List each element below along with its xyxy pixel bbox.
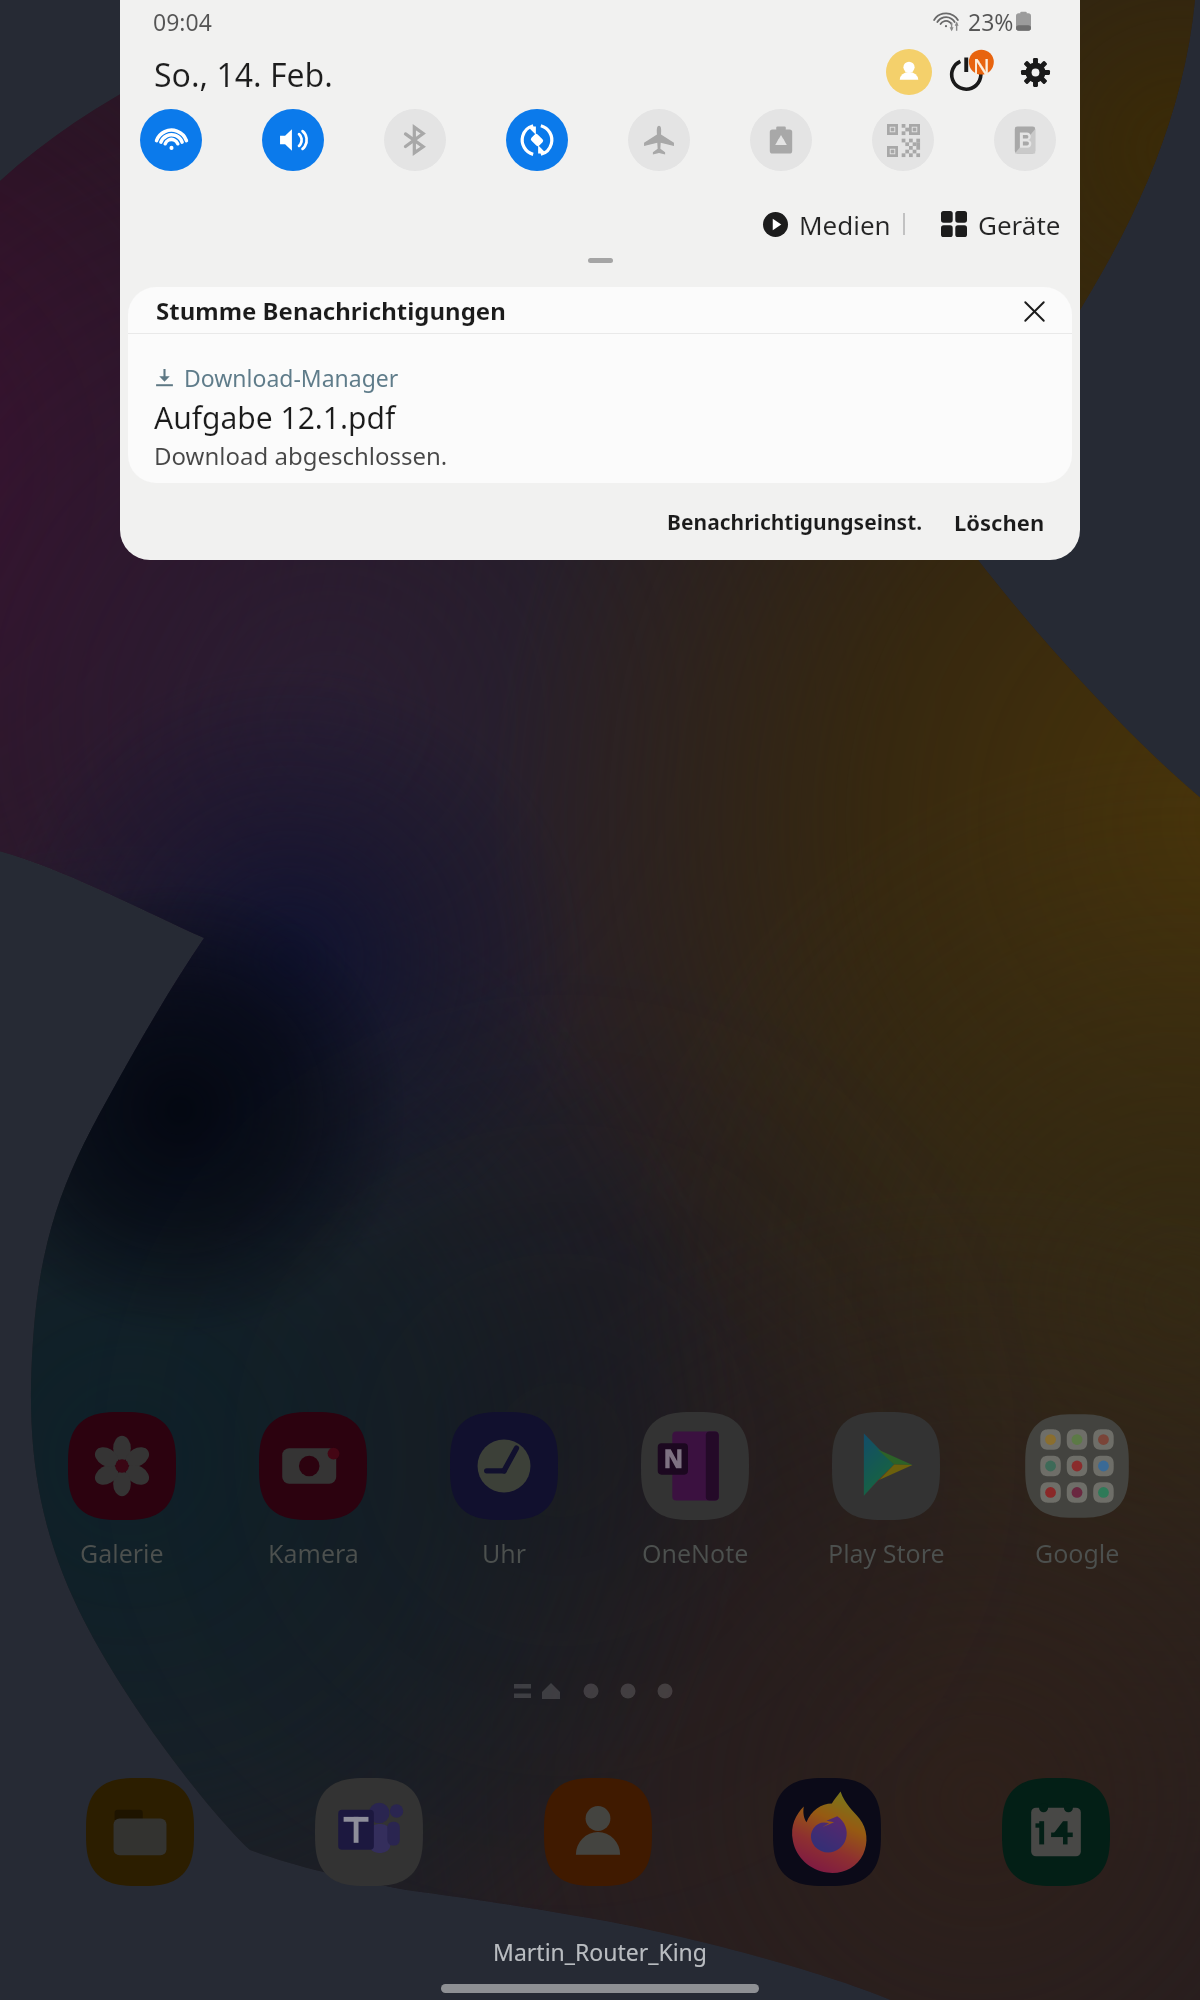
button[interactable]: Automatisch drehen [506,109,568,171]
button[interactable]: Löschen [944,496,1054,548]
button[interactable]: Teams [315,1778,423,1886]
button[interactable]: Profil [886,49,932,95]
staticText: Geräte [978,207,1061,242]
staticText: OneNote [642,1536,749,1570]
button[interactable]: Flugmodus [628,109,690,171]
staticText: N [973,51,990,81]
button[interactable]: Einstellungen [1009,46,1061,98]
button[interactable]: Firefox [773,1778,881,1886]
button[interactable]: Energiesparmodus [750,109,812,171]
staticText: Uhr [482,1536,527,1570]
button[interactable]: Kontakte [544,1778,652,1886]
staticText: Download abgeschlossen. [154,439,448,472]
staticText: Martin_Router_King [0,1936,1200,1967]
staticText: Benachrichtigungseinst. [667,508,923,537]
button[interactable]: Play Store [791,1412,981,1570]
button[interactable]: Ton [262,109,324,171]
button[interactable]: Medien [763,198,891,250]
staticText: Stumme Benachrichtigungen [156,294,506,327]
button[interactable]: Uhr [409,1412,599,1570]
button[interactable]: Blaulichtfilter [994,109,1056,171]
button[interactable]: Google [982,1412,1172,1570]
staticText: 23% [968,6,1014,37]
button[interactable]: Kamera [218,1412,408,1570]
staticText: Galerie [80,1536,164,1570]
staticText: Kamera [268,1536,359,1570]
staticText: Medien [799,207,891,242]
button[interactable]: WLAN [140,109,202,171]
button[interactable]: Stumme Benachrichtigungen [128,287,1072,333]
staticText: Play Store [828,1536,945,1570]
staticText: 09:04 [153,6,212,37]
staticText: Google [1035,1536,1120,1570]
button[interactable]: Galerie [27,1412,217,1570]
button[interactable]: QR-Code scannen [872,109,934,171]
button[interactable]: Kalender [1002,1778,1110,1886]
button[interactable]: Eigene Dateien [86,1778,194,1886]
staticText: So., 14. Feb. [154,53,333,97]
button[interactable]: Bluetooth [384,109,446,171]
staticText: Löschen [954,507,1045,537]
staticText: Download-Manager [184,362,399,393]
button[interactable]: Startbildschirm-Seiten [508,1672,696,1710]
button[interactable]: Ausschalten [947,46,999,98]
button[interactable]: Schließen [1014,291,1054,331]
staticText: Aufgabe 12.1.pdf [154,397,396,438]
button[interactable]: OneNote [600,1412,790,1570]
button[interactable]: Geräte [941,198,1061,250]
button[interactable]: Benachrichtigungseinst. [666,496,924,548]
